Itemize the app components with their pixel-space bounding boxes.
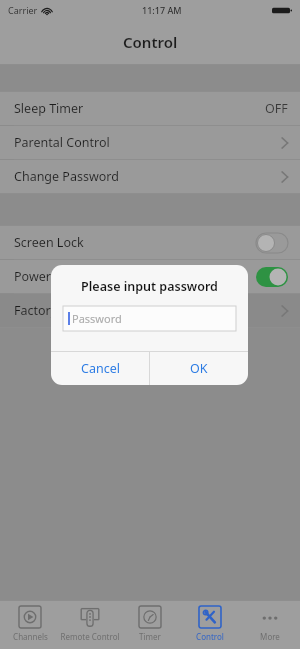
staticText: Cancel (81, 360, 120, 377)
button[interactable]: Control (180, 601, 240, 649)
button[interactable]: Toggle on (256, 267, 288, 287)
button[interactable]: Password (63, 306, 236, 331)
staticText: Factory Reset (14, 302, 93, 319)
button[interactable]: OK (150, 352, 248, 385)
button[interactable]: Toggle off (256, 233, 288, 253)
button[interactable]: Parental Control (0, 126, 300, 159)
button[interactable]: Screen Lock (0, 226, 300, 259)
button[interactable]: Timer (120, 601, 180, 649)
button[interactable]: Factory Reset (0, 294, 300, 327)
staticText: More (260, 631, 280, 642)
staticText: Channels (13, 631, 48, 642)
button[interactable]: Cancel (51, 352, 149, 385)
staticText: Please input password (51, 278, 248, 295)
staticText: Screen Lock (14, 234, 84, 251)
staticText: Remote Control (60, 631, 120, 642)
staticText: Carrier (8, 4, 38, 16)
staticText: OFF (265, 100, 288, 117)
button[interactable]: Change Password (0, 160, 300, 193)
staticText: Parental Control (14, 134, 110, 151)
button[interactable]: More (240, 601, 300, 649)
staticText: Power (14, 268, 51, 285)
staticText: Password (72, 311, 122, 326)
staticText: Control (123, 32, 178, 52)
button[interactable]: Channels (0, 601, 60, 649)
button[interactable]: Sleep Timer (0, 92, 300, 125)
staticText: Timer (139, 631, 161, 642)
staticText: 11:17 AM (142, 4, 182, 16)
staticText: OK (190, 360, 208, 377)
staticText: Change Password (14, 168, 119, 185)
staticText: Sleep Timer (14, 100, 84, 117)
button[interactable]: Power (0, 260, 300, 293)
staticText: Control (196, 631, 224, 642)
button[interactable]: Remote Control (60, 601, 120, 649)
